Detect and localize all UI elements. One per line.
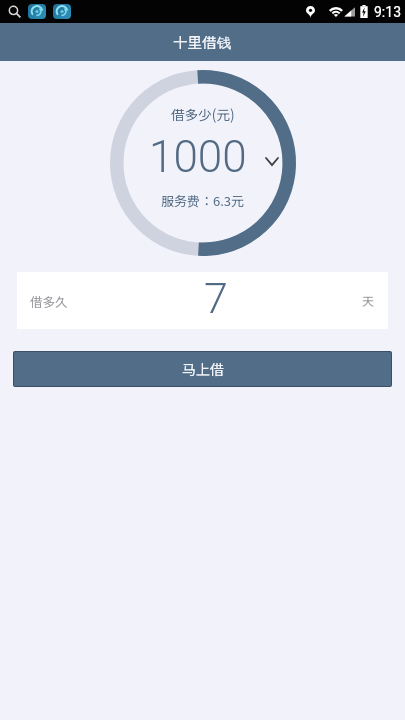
button[interactable]: 马上借 [13, 351, 392, 387]
staticText: 9:13 [374, 4, 401, 20]
staticText: 借多久 [30, 292, 68, 310]
button[interactable]: Choose amount [264, 153, 280, 169]
staticText: 借多少(元) [171, 104, 235, 124]
staticText: 1000 [149, 131, 247, 183]
staticText: 天 [362, 292, 375, 309]
staticText: 马上借 [182, 359, 224, 379]
button[interactable]: 借多久 [17, 272, 388, 329]
staticText: 7 [204, 273, 228, 323]
staticText: 服务费：6.3元 [161, 191, 245, 210]
staticText: 十里借钱 [173, 31, 232, 52]
